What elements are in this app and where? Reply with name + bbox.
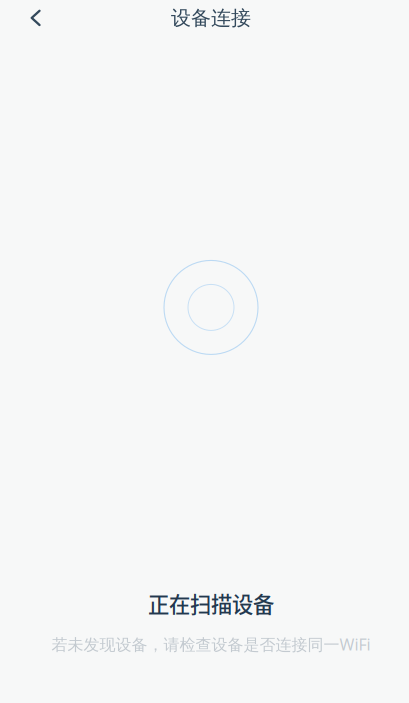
staticText: 若未发现设备，请检查设备是否连接同一WiFi [51, 634, 370, 655]
staticText: 正在扫描设备 [148, 588, 274, 619]
button[interactable]: Back [16, 0, 56, 36]
staticText: 设备连接 [171, 6, 251, 30]
